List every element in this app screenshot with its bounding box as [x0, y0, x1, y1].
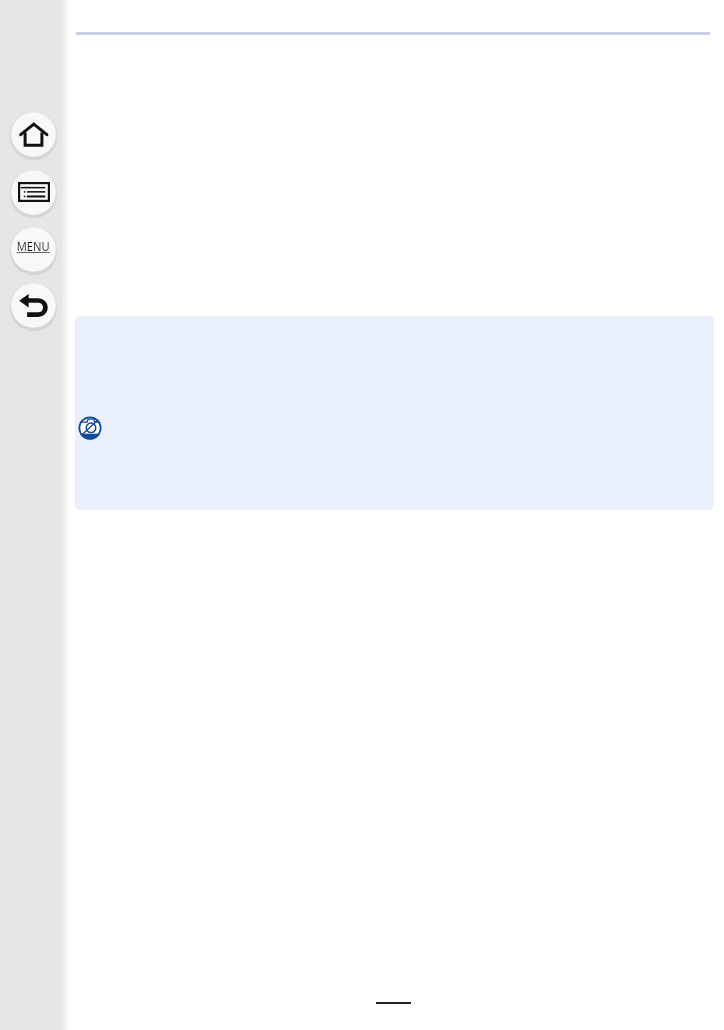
button[interactable]: Table of contents [9, 168, 58, 217]
other: Recording not available [78, 416, 102, 440]
button[interactable]: Home [9, 110, 58, 159]
staticText: MENU [17, 237, 50, 255]
button[interactable]: Recording not available [75, 316, 714, 510]
button[interactable]: Back [9, 281, 58, 330]
button[interactable]: Menu [9, 225, 58, 274]
